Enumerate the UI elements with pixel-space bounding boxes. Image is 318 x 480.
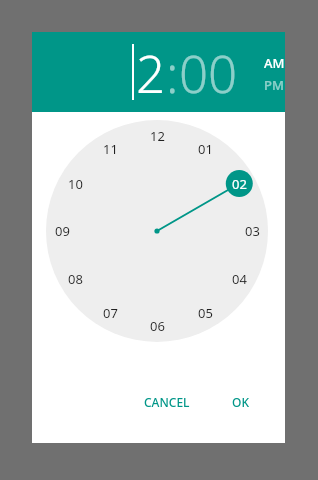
staticText: OK xyxy=(232,394,249,410)
button[interactable]: 11 xyxy=(95,134,125,164)
button[interactable]: 10 xyxy=(60,169,90,199)
button[interactable]: PM xyxy=(264,76,284,94)
staticText: 00 xyxy=(179,38,238,107)
button[interactable]: 06 xyxy=(142,311,172,341)
staticText: 06 xyxy=(150,317,165,335)
staticText: 09 xyxy=(55,222,70,240)
button[interactable]: 2 xyxy=(136,38,166,107)
staticText: 04 xyxy=(232,270,247,288)
button[interactable]: 03 xyxy=(237,216,267,246)
button[interactable]: AM xyxy=(264,54,285,72)
button[interactable]: 12 xyxy=(142,121,172,151)
staticText: 12 xyxy=(150,127,165,145)
button[interactable]: 05 xyxy=(190,298,220,328)
button[interactable]: OK xyxy=(224,387,257,417)
staticText: PM xyxy=(264,76,284,94)
staticText: 01 xyxy=(198,140,213,158)
staticText: AM xyxy=(264,54,285,72)
staticText: 03 xyxy=(245,222,260,240)
button[interactable]: 04 xyxy=(224,264,254,294)
staticText: 10 xyxy=(68,175,83,193)
staticText: 02 xyxy=(232,175,247,193)
button[interactable]: 09 xyxy=(47,216,77,246)
button[interactable]: 00 xyxy=(179,38,238,107)
button[interactable]: 08 xyxy=(60,264,90,294)
staticText: 07 xyxy=(103,304,118,322)
staticText: CANCEL xyxy=(144,394,190,410)
button[interactable]: CANCEL xyxy=(136,387,198,417)
button[interactable]: 01 xyxy=(190,134,220,164)
button[interactable]: 07 xyxy=(95,298,125,328)
button[interactable]: 02 xyxy=(224,169,254,199)
staticText: 11 xyxy=(103,140,118,158)
staticText: 08 xyxy=(68,270,83,288)
staticText: 05 xyxy=(198,304,213,322)
staticText: 2 xyxy=(136,38,166,107)
staticText: : xyxy=(166,38,179,107)
